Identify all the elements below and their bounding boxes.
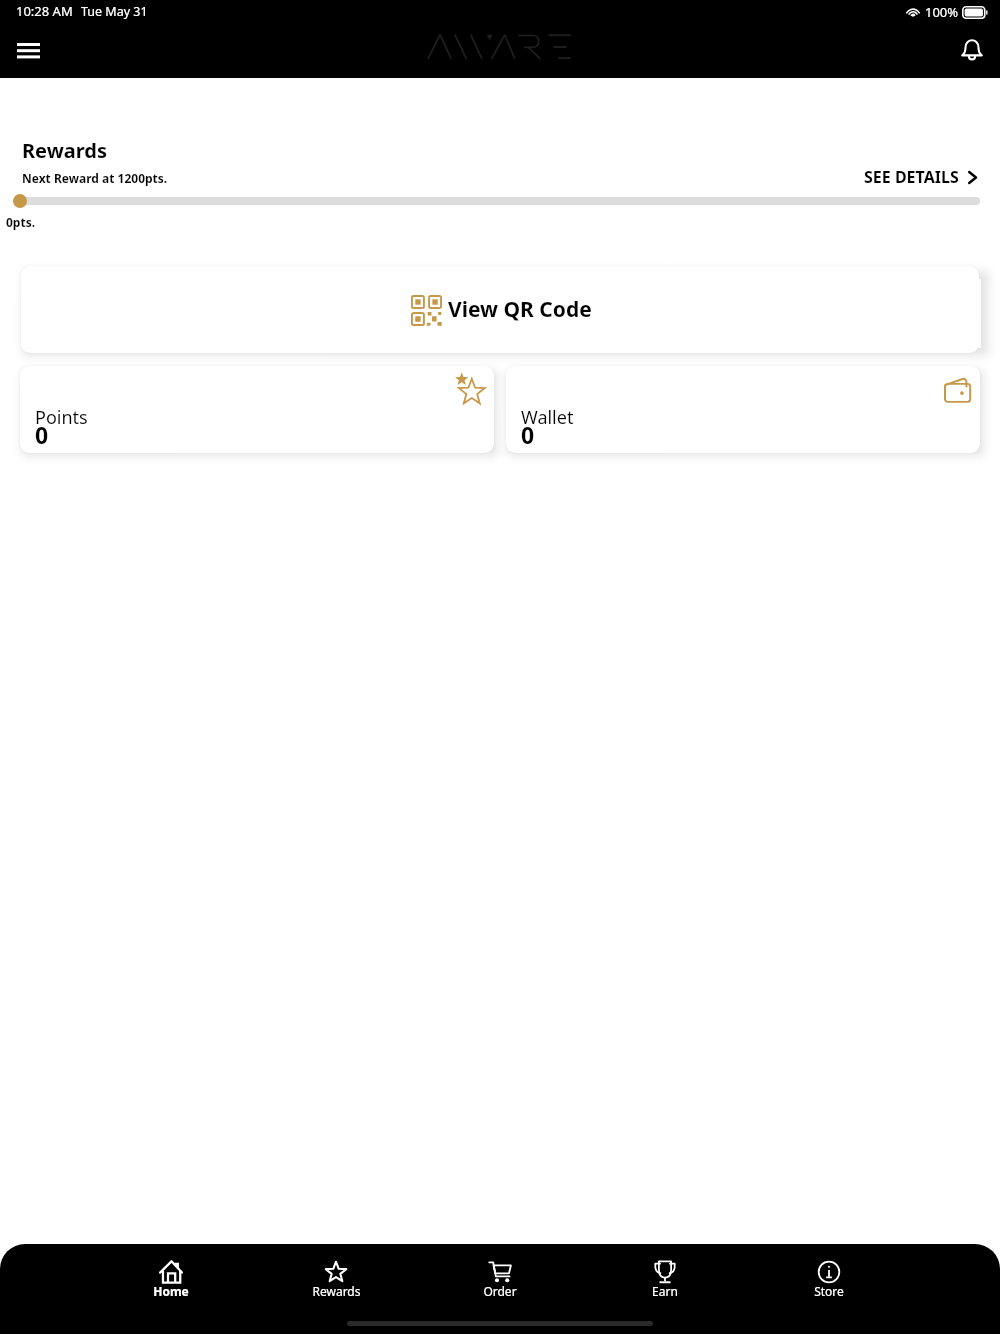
staticText: Order xyxy=(483,1283,517,1299)
staticText: Wallet xyxy=(521,405,574,430)
button[interactable]: Store xyxy=(748,1260,910,1300)
staticText: Points xyxy=(35,405,88,430)
button[interactable]: Home xyxy=(90,1260,252,1300)
staticText: 100% xyxy=(925,3,959,21)
button[interactable]: Menu xyxy=(8,30,48,70)
staticText: Earn xyxy=(652,1283,678,1299)
staticText: 10:28 AM xyxy=(16,2,73,20)
button[interactable]: Points xyxy=(20,366,494,453)
staticText: 0 xyxy=(521,419,535,450)
staticText: Tue May 31 xyxy=(81,3,148,20)
button[interactable]: Notifications xyxy=(952,30,992,70)
staticText: SEE DETAILS xyxy=(864,166,959,188)
button[interactable]: View QR Code xyxy=(21,266,979,353)
staticText: Rewards xyxy=(22,137,107,164)
staticText: 0 xyxy=(35,419,49,450)
staticText: 0pts. xyxy=(6,214,36,230)
staticText: Next Reward at 1200pts. xyxy=(22,170,168,186)
button[interactable]: Earn xyxy=(584,1260,746,1300)
staticText: Store xyxy=(814,1283,844,1299)
button[interactable]: Order xyxy=(419,1260,581,1300)
button[interactable]: Wallet xyxy=(506,366,980,453)
staticText: Rewards xyxy=(312,1283,361,1299)
staticText: Home xyxy=(153,1283,189,1299)
staticText: View QR Code xyxy=(448,295,592,324)
button[interactable]: SEE DETAILS xyxy=(864,166,978,188)
button[interactable]: Rewards xyxy=(255,1260,417,1300)
